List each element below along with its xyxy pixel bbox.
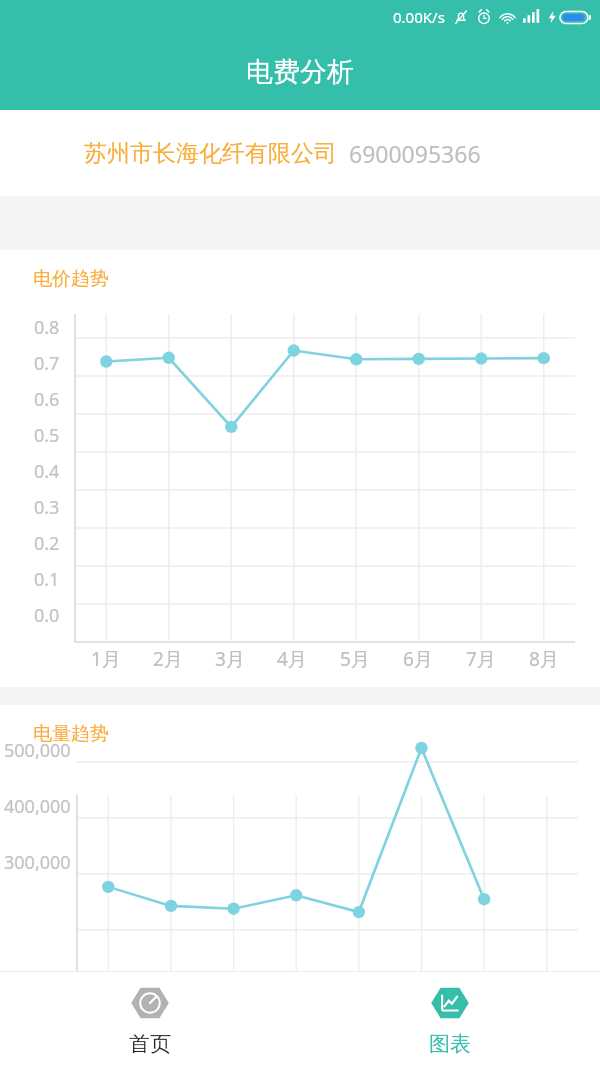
staticText: 400,000 bbox=[4, 794, 71, 819]
staticText: 4月 bbox=[277, 646, 307, 672]
staticText: 2月 bbox=[153, 646, 183, 672]
other: 图表 bbox=[430, 983, 470, 1023]
staticText: 0.7 bbox=[34, 351, 60, 376]
staticText: 0.5 bbox=[34, 423, 60, 448]
staticText: 0.00K/s bbox=[393, 7, 445, 27]
staticText: 苏州市长海化纤有限公司 bbox=[84, 139, 337, 168]
button[interactable]: 苏州市长海化纤有限公司 bbox=[0, 110, 600, 196]
staticText: 电价趋势 bbox=[33, 267, 109, 291]
staticText: 图表 bbox=[429, 1031, 471, 1057]
staticText: 电费分析 bbox=[246, 55, 354, 89]
staticText: 0.2 bbox=[34, 531, 60, 556]
staticText: 5月 bbox=[340, 646, 370, 672]
staticText: 1月 bbox=[91, 646, 121, 672]
staticText: 首页 bbox=[129, 1031, 171, 1057]
staticText: 0.0 bbox=[34, 603, 60, 628]
staticText: 0.3 bbox=[34, 495, 60, 520]
staticText: 6月 bbox=[403, 646, 433, 672]
staticText: 500,000 bbox=[4, 738, 71, 763]
staticText: 电量趋势 bbox=[33, 722, 109, 746]
staticText: 0.6 bbox=[34, 387, 60, 412]
staticText: 8月 bbox=[529, 646, 559, 672]
staticText: 0.8 bbox=[34, 315, 60, 340]
staticText: 300,000 bbox=[4, 850, 71, 875]
staticText: 6900095366 bbox=[349, 138, 481, 169]
staticText: 0.1 bbox=[34, 567, 60, 592]
button[interactable]: 首页 bbox=[0, 972, 300, 1067]
staticText: 0.4 bbox=[34, 459, 60, 484]
staticText: 3月 bbox=[215, 646, 245, 672]
other: 首页 bbox=[130, 983, 170, 1023]
button[interactable]: 图表 bbox=[300, 972, 600, 1067]
staticText: 7月 bbox=[466, 646, 496, 672]
